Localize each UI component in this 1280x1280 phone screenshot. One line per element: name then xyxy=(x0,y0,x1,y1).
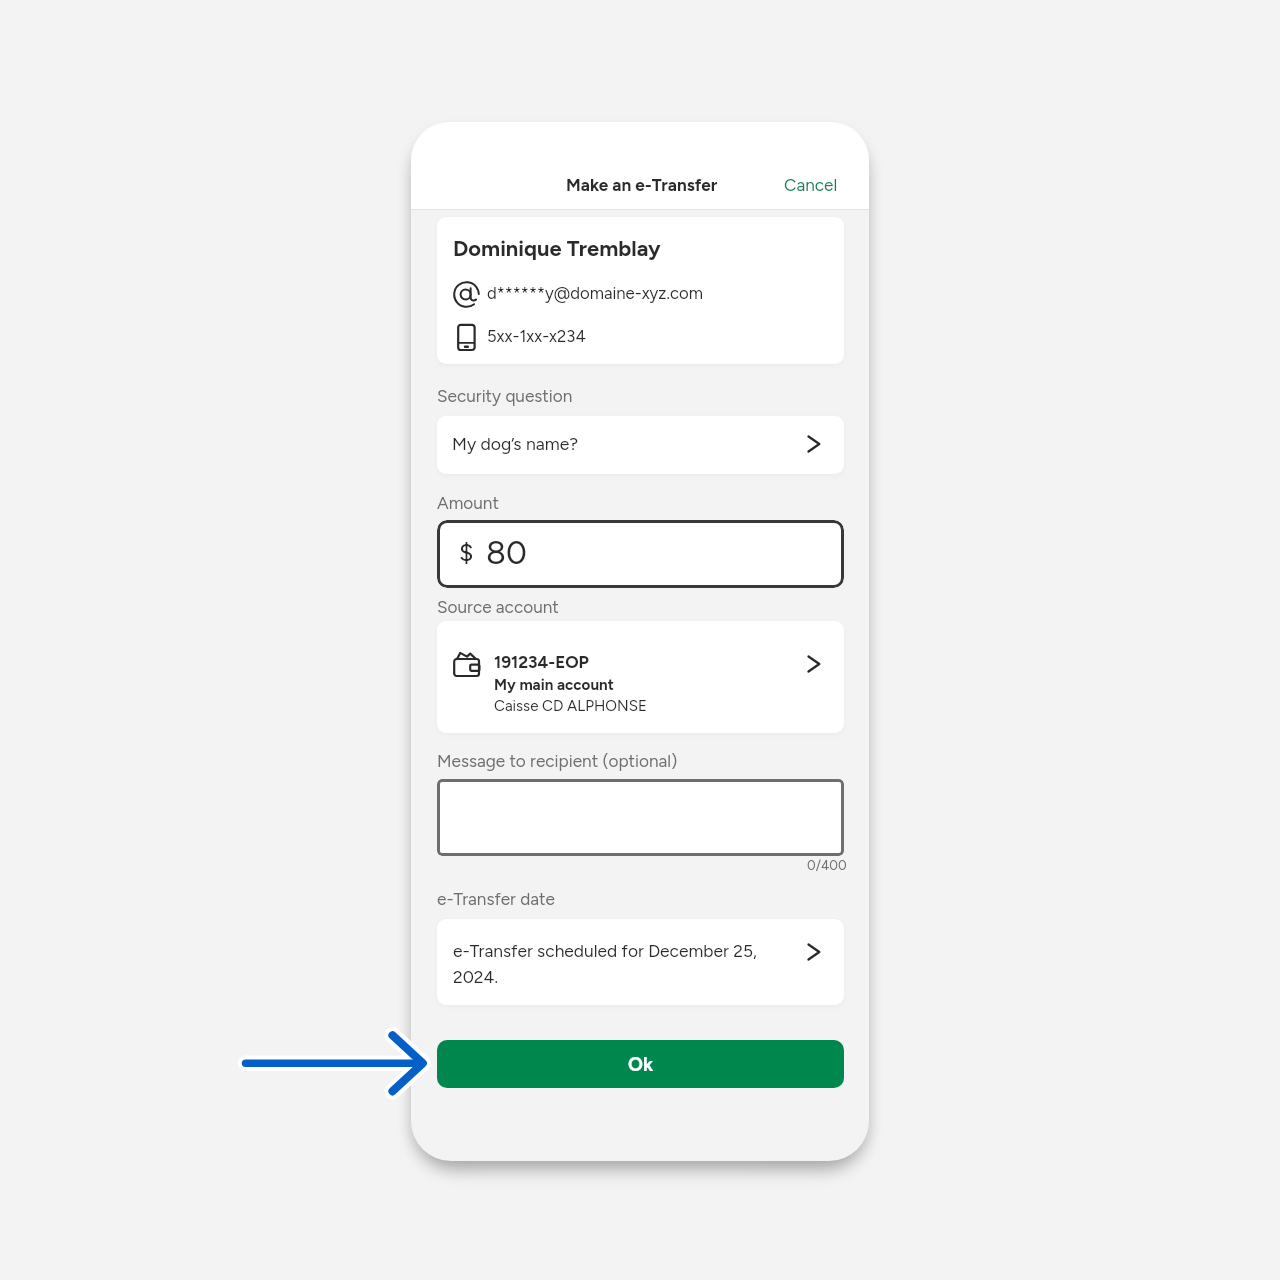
staticText: 80 xyxy=(486,533,527,572)
staticText: 5xx-1xx-x234 xyxy=(487,326,586,346)
other: Pointer to Ok button xyxy=(0,0,1280,1280)
staticText: Dominique Tremblay xyxy=(453,235,661,261)
staticText: My dog’s name? xyxy=(452,433,579,454)
staticText: Ok xyxy=(628,1053,654,1076)
staticText: 0/400 xyxy=(807,857,847,873)
button[interactable] xyxy=(437,779,844,856)
staticText: $ xyxy=(459,538,474,569)
staticText: d******y@domaine-xyz.com xyxy=(487,283,703,303)
staticText: Message to recipient (optional) xyxy=(437,751,678,772)
staticText: Caisse CD ALPHONSE xyxy=(494,697,647,715)
staticText: e-Transfer date xyxy=(437,889,555,910)
staticText: Amount xyxy=(437,493,499,514)
staticText: Make an e-Transfer xyxy=(566,175,718,196)
button[interactable]: Ok xyxy=(437,1040,844,1088)
staticText: Source account xyxy=(437,597,559,618)
button[interactable]: $ xyxy=(437,520,844,588)
staticText: Security question xyxy=(437,386,573,407)
staticText: My main account xyxy=(494,676,614,694)
button[interactable]: 191234-EOP xyxy=(437,621,844,733)
button[interactable]: e-Transfer scheduled for December 25, 20… xyxy=(437,919,844,1005)
staticText: 191234-EOP xyxy=(494,652,589,672)
button[interactable]: Cancel xyxy=(772,170,850,201)
staticText: Cancel xyxy=(784,175,838,196)
button[interactable]: My dog’s name? xyxy=(437,416,844,474)
staticText: e-Transfer scheduled for December 25, 20… xyxy=(453,940,773,987)
